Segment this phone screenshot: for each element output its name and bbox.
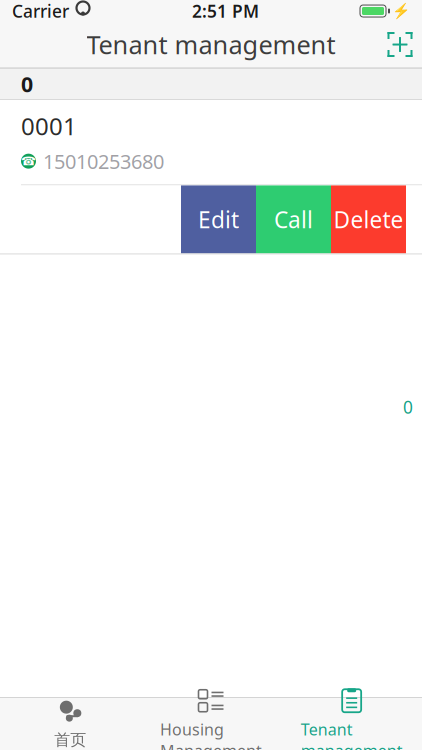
staticText: 0: [403, 395, 413, 418]
staticText: Tenant management: [86, 28, 335, 61]
button[interactable]: Call: [256, 185, 331, 253]
staticText: Tenant management: [301, 719, 403, 750]
staticText: 首页: [54, 730, 86, 750]
staticText: Carrier: [12, 0, 69, 22]
button[interactable]: Add tenant: [378, 22, 422, 66]
button[interactable]: Delete: [331, 185, 406, 253]
staticText: 15010253680: [43, 148, 164, 174]
staticText: Edit: [198, 204, 239, 234]
staticText: ⚡: [392, 3, 410, 19]
staticText: ☎: [21, 154, 36, 168]
staticText: 2:51 PM: [192, 0, 259, 22]
button[interactable]: 0001: [0, 100, 422, 185]
staticText: Housing Management: [160, 719, 262, 750]
staticText: 0: [21, 70, 33, 98]
staticText: 0001: [21, 110, 77, 142]
button[interactable]: 首页: [0, 693, 141, 750]
button[interactable]: Tenant management: [281, 682, 422, 750]
staticText: Call: [274, 204, 313, 234]
staticText: Delete: [333, 204, 403, 234]
button[interactable]: Edit: [181, 185, 256, 253]
button[interactable]: Housing Management: [141, 682, 281, 750]
